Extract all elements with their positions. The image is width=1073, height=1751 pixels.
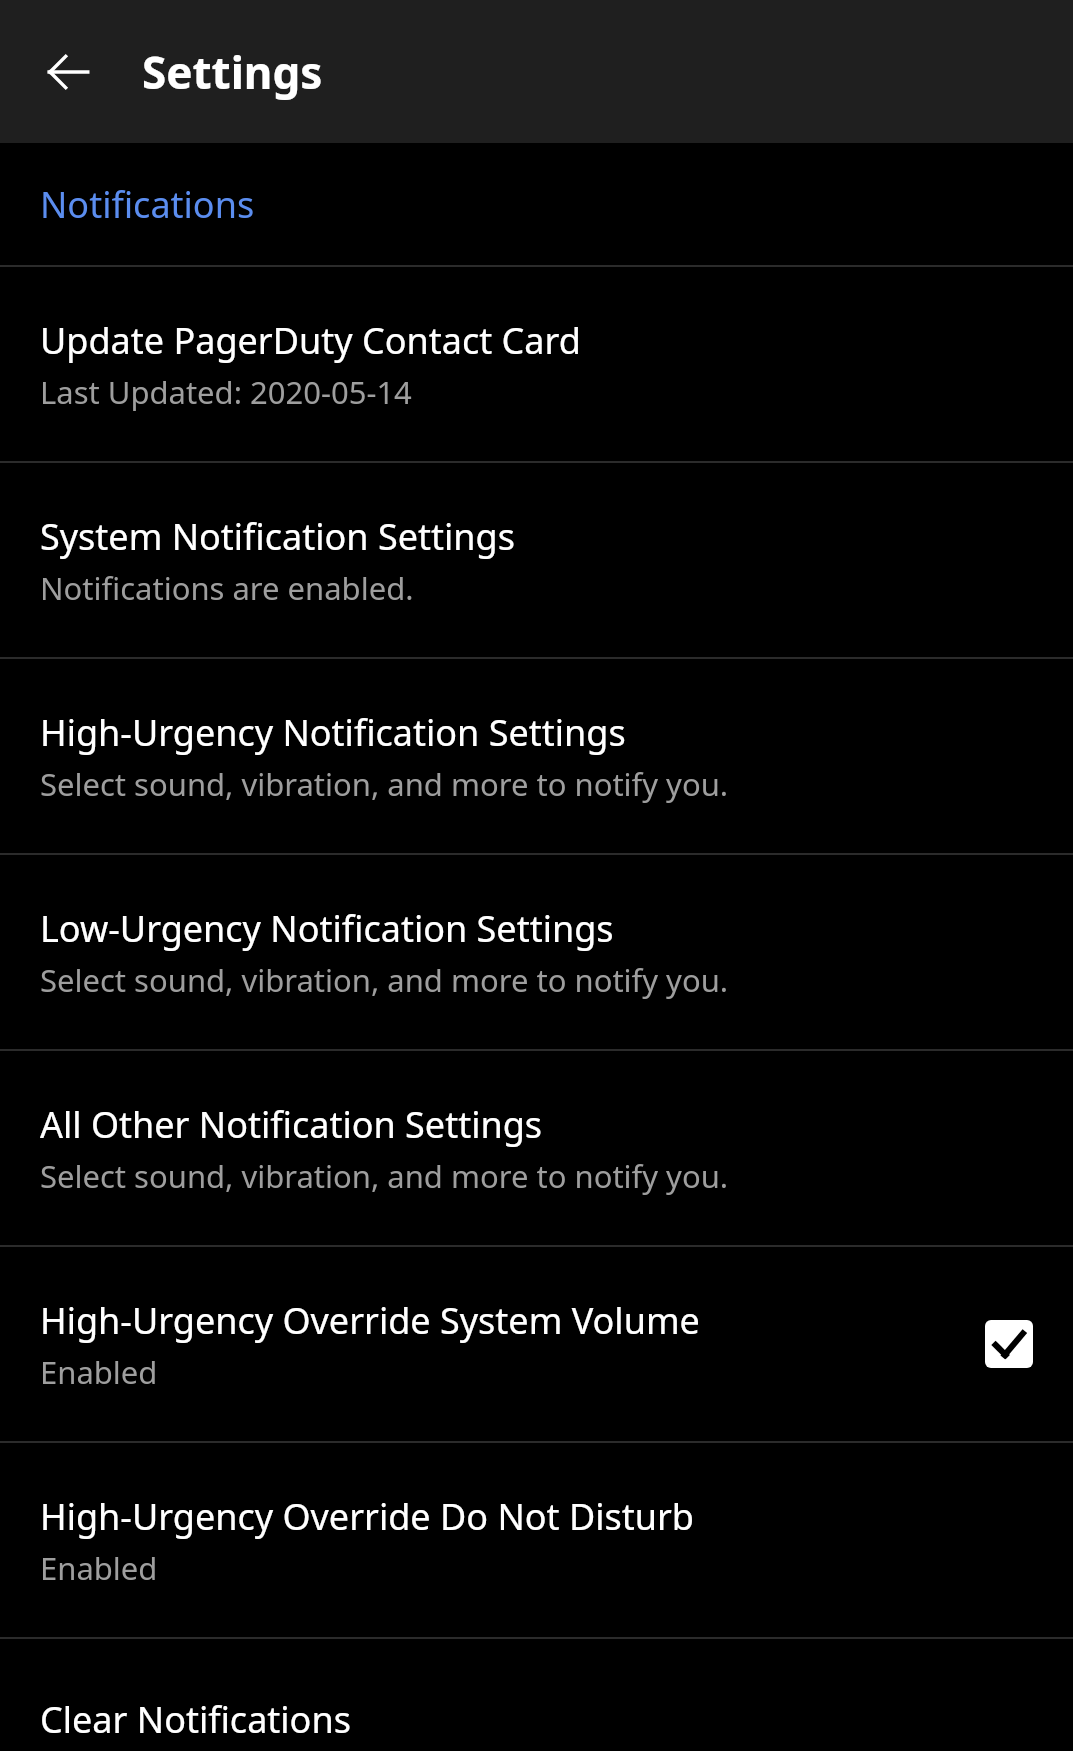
button[interactable]: Update PagerDuty Contact Card — [0, 267, 1073, 461]
button[interactable]: High-Urgency Override Do Not Disturb — [0, 1443, 1073, 1637]
button[interactable]: Back — [24, 28, 112, 116]
staticText: Clear Notifications — [40, 1695, 351, 1744]
staticText: Enabled — [40, 1547, 158, 1589]
staticText: Last Updated: 2020-05-14 — [40, 371, 412, 413]
staticText: High-Urgency Override System Volume — [40, 1296, 700, 1345]
staticText: Update PagerDuty Contact Card — [40, 316, 581, 365]
button[interactable]: High-Urgency Override System Volume — [0, 1247, 1073, 1441]
staticText: Low-Urgency Notification Settings — [40, 904, 614, 953]
staticText: Settings — [142, 42, 323, 102]
staticText: High-Urgency Override Do Not Disturb — [40, 1492, 694, 1541]
button[interactable]: All Other Notification Settings — [0, 1051, 1073, 1245]
staticText: System Notification Settings — [40, 512, 515, 561]
staticText: Enabled — [40, 1351, 158, 1393]
other: Toggle High-Urgency Override System Volu… — [985, 1320, 1033, 1368]
staticText: Select sound, vibration, and more to not… — [40, 1155, 729, 1197]
button[interactable]: Clear Notifications — [0, 1639, 1073, 1751]
button[interactable]: System Notification Settings — [0, 463, 1073, 657]
button[interactable]: High-Urgency Notification Settings — [0, 659, 1073, 853]
staticText: High-Urgency Notification Settings — [40, 708, 626, 757]
button[interactable]: Low-Urgency Notification Settings — [0, 855, 1073, 1049]
staticText: Select sound, vibration, and more to not… — [40, 959, 729, 1001]
staticText: All Other Notification Settings — [40, 1100, 543, 1149]
staticText: Notifications — [40, 180, 255, 229]
staticText: Notifications are enabled. — [40, 567, 414, 609]
staticText: Select sound, vibration, and more to not… — [40, 763, 729, 805]
